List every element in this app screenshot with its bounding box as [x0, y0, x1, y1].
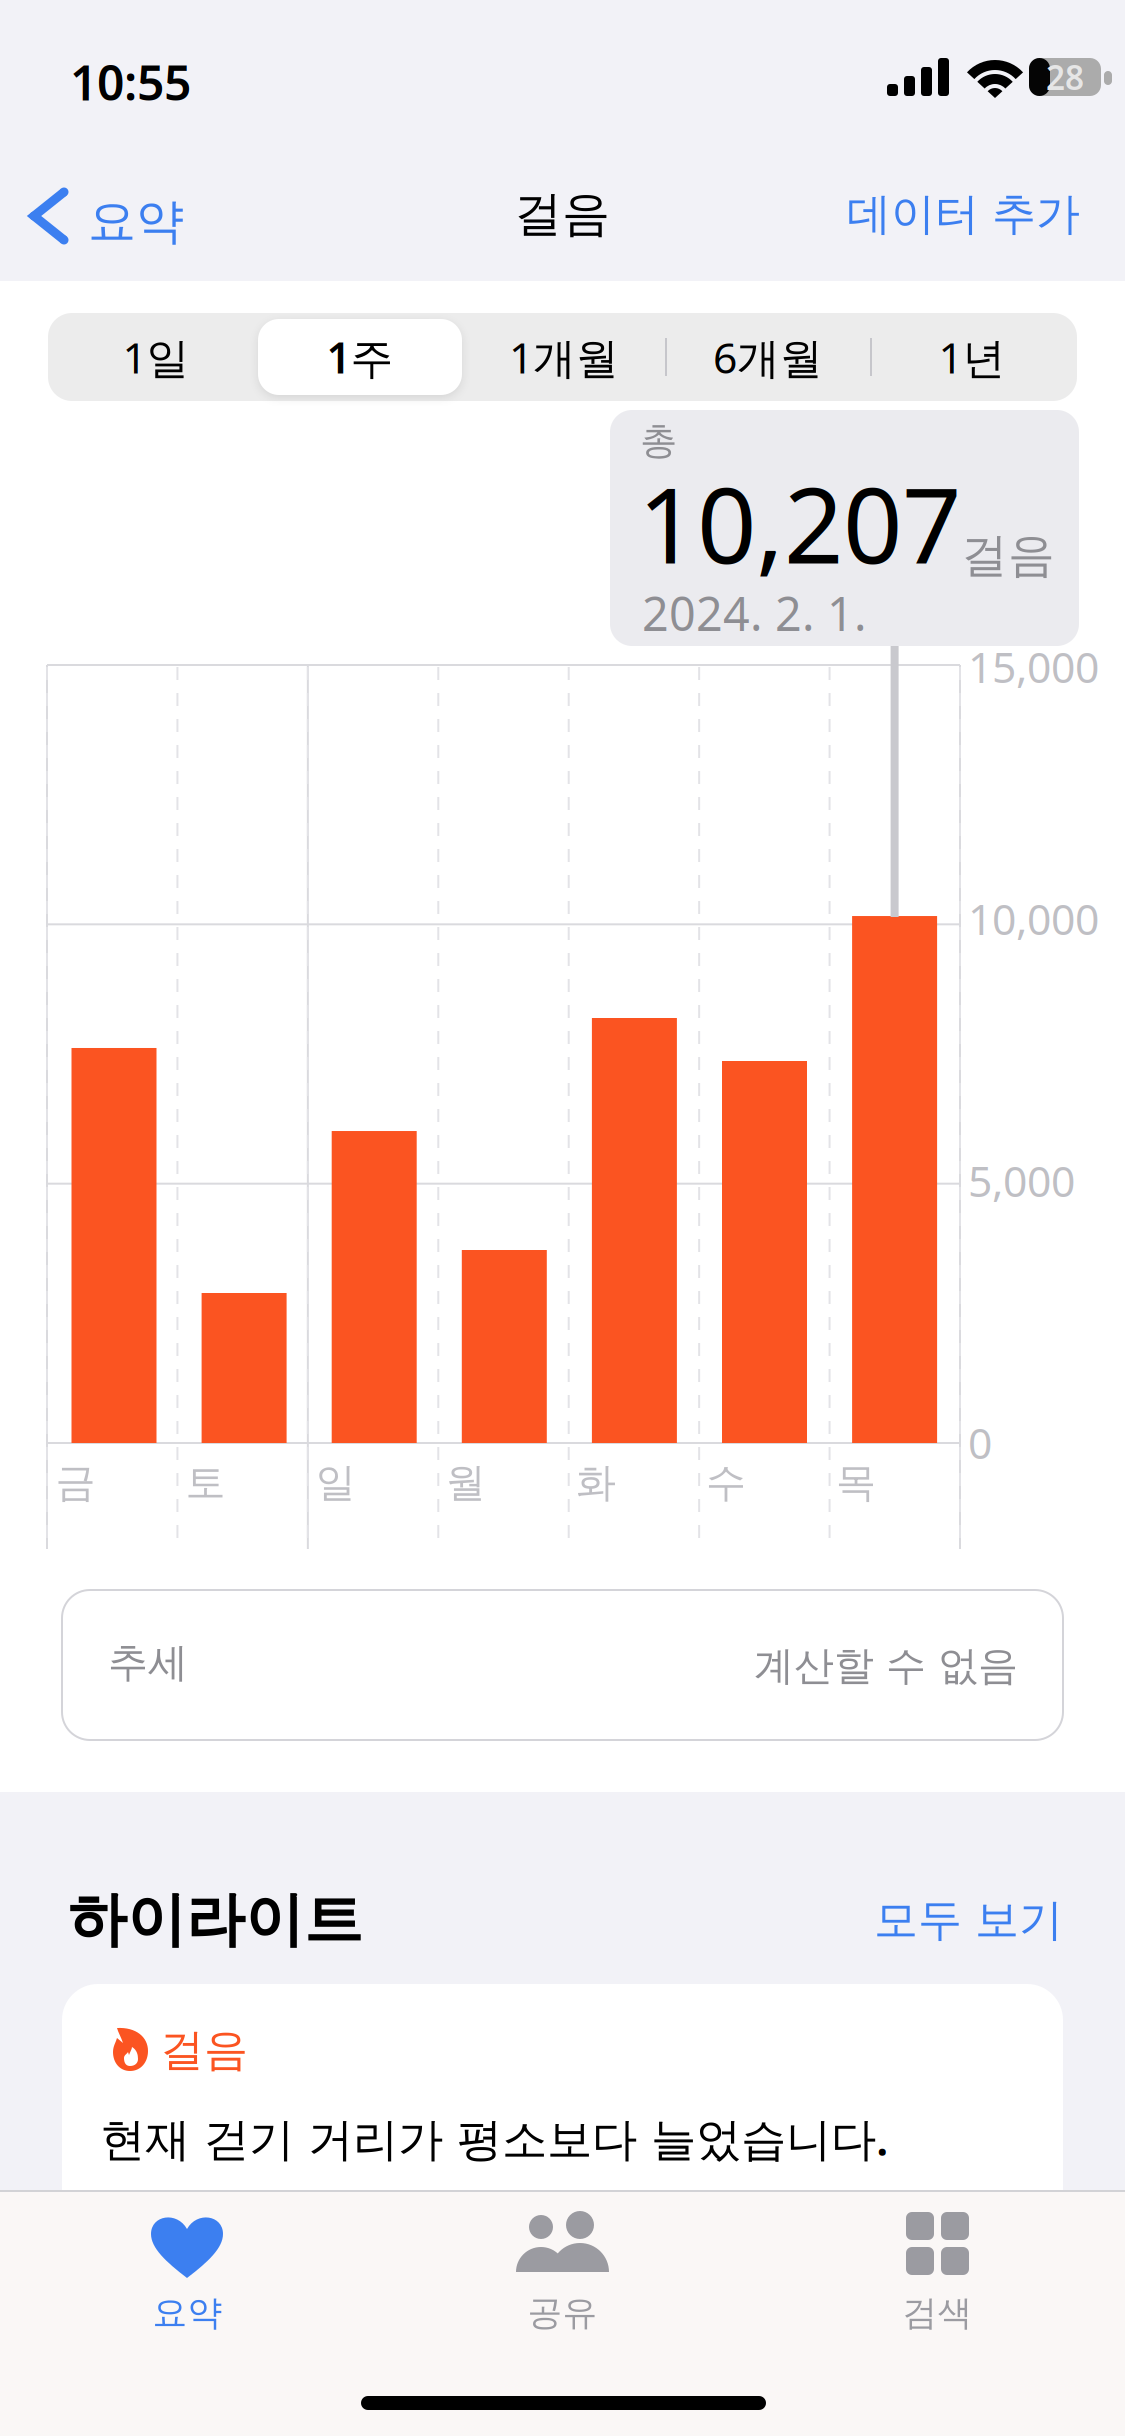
- staticText: 추세: [108, 1638, 188, 1687]
- staticText: 10,000: [968, 890, 1099, 947]
- staticText: 28: [1046, 55, 1084, 99]
- button[interactable]: 공유: [375, 2208, 750, 2358]
- staticText: 1일: [122, 329, 189, 385]
- staticText: 목: [836, 1458, 876, 1507]
- staticText: 걸음: [160, 2023, 248, 2077]
- button[interactable]: 1주: [258, 319, 462, 395]
- button[interactable]: 추세: [62, 1590, 1063, 1740]
- staticText: 금: [55, 1458, 95, 1507]
- staticText: 1주: [326, 329, 393, 385]
- button[interactable]: 요약: [20, 168, 280, 264]
- staticText: 현재 걷기 거리가 평소보다 늘었습니다.: [100, 2108, 889, 2168]
- staticText: 월: [446, 1458, 486, 1507]
- button[interactable]: 검색: [750, 2208, 1125, 2358]
- staticText: 화: [576, 1458, 616, 1507]
- staticText: 요약: [152, 2292, 222, 2334]
- staticText: 10,207: [638, 454, 961, 592]
- staticText: 걸음: [961, 527, 1055, 584]
- button[interactable]: 데이터 추가: [760, 186, 1080, 242]
- staticText: 총: [640, 418, 677, 464]
- staticText: 일: [316, 1458, 356, 1507]
- staticText: 2024. 2. 1.: [642, 582, 867, 644]
- staticText: 하이라이트: [68, 1884, 363, 1956]
- staticText: 걸음: [514, 184, 610, 243]
- button[interactable]: 모두 보기: [874, 1893, 1063, 1947]
- staticText: 10:55: [70, 50, 191, 114]
- staticText: 5,000: [968, 1152, 1075, 1209]
- staticText: 6개월: [713, 329, 823, 385]
- staticText: 검색: [902, 2292, 972, 2334]
- staticText: 계산할 수 없음: [754, 1641, 1018, 1690]
- staticText: 모두 보기: [874, 1893, 1063, 1947]
- button[interactable]: 1년: [870, 319, 1074, 395]
- button[interactable]: 1개월: [462, 319, 666, 395]
- staticText: 0: [968, 1414, 992, 1471]
- button[interactable]: 요약: [0, 2208, 375, 2358]
- staticText: 데이터 추가: [847, 187, 1080, 241]
- staticText: 공유: [527, 2292, 597, 2334]
- button[interactable]: 1일: [54, 319, 258, 395]
- button[interactable]: 6개월: [666, 319, 870, 395]
- staticText: 요약: [88, 192, 184, 251]
- staticText: 15,000: [968, 638, 1099, 695]
- staticText: 1년: [938, 329, 1005, 385]
- staticText: 토: [186, 1458, 226, 1507]
- staticText: 수: [706, 1458, 746, 1507]
- staticText: 1개월: [509, 329, 619, 385]
